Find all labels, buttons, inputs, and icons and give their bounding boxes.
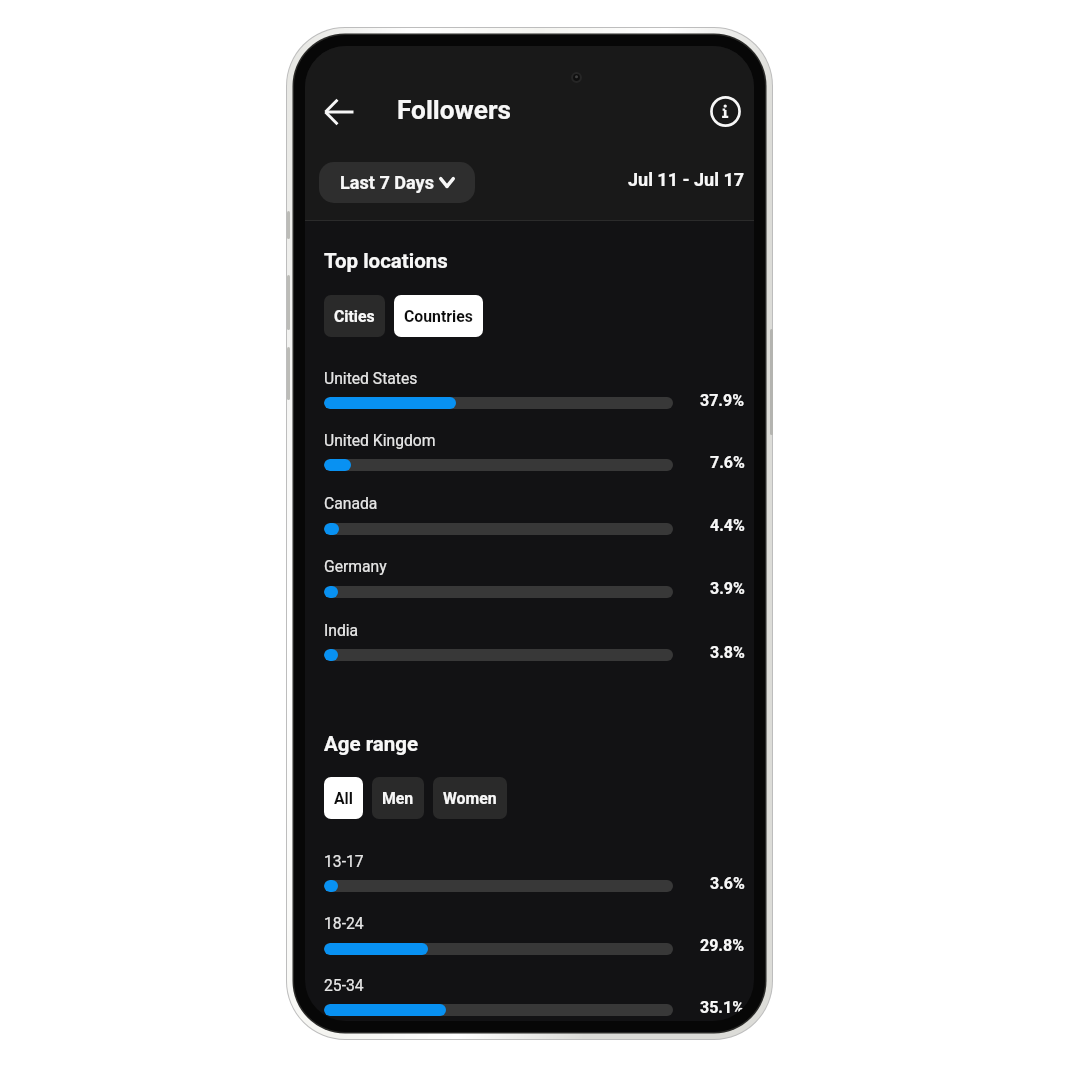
staticText: Countries xyxy=(404,307,473,326)
staticText: Jul 11 - Jul 17 xyxy=(628,169,745,190)
staticText: 3.6% xyxy=(710,874,745,893)
staticText: Followers xyxy=(397,95,511,126)
staticText: Top locations xyxy=(324,249,448,273)
button[interactable]: Men xyxy=(372,777,424,819)
button[interactable]: Cities xyxy=(324,295,385,337)
staticText: 3.9% xyxy=(710,579,745,598)
button[interactable]: All xyxy=(324,777,363,819)
button[interactable]: Last 7 Days xyxy=(319,162,475,203)
button[interactable]: Back xyxy=(305,81,378,143)
staticText: Canada xyxy=(324,494,378,512)
staticText: Last 7 Days xyxy=(340,172,434,193)
staticText: United States xyxy=(324,369,418,387)
staticText: 29.8% xyxy=(700,936,745,955)
staticText: Germany xyxy=(324,557,387,575)
staticText: 4.4% xyxy=(710,516,745,535)
staticText: Women xyxy=(443,789,497,808)
staticText: 37.9% xyxy=(700,391,745,410)
button[interactable]: Information xyxy=(695,80,754,142)
button[interactable]: Countries xyxy=(394,295,483,337)
staticText: Cities xyxy=(334,307,375,326)
staticText: 25-34 xyxy=(324,976,364,994)
staticText: Age range xyxy=(324,732,419,756)
staticText: 7.6% xyxy=(710,453,745,472)
staticText: Men xyxy=(382,789,414,808)
button[interactable]: Women xyxy=(433,777,507,819)
staticText: 18-24 xyxy=(324,914,364,932)
staticText: 3.8% xyxy=(710,643,745,662)
staticText: 35.1% xyxy=(700,998,745,1017)
staticText: United Kingdom xyxy=(324,431,436,449)
staticText: India xyxy=(324,621,359,639)
staticText: 13-17 xyxy=(324,852,364,870)
staticText: All xyxy=(334,789,353,808)
